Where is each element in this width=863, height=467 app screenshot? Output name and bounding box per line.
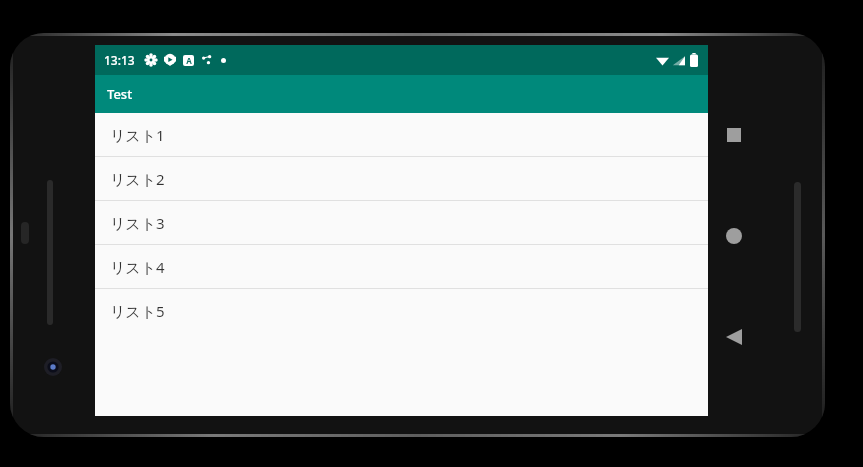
button[interactable]: リスト5 <box>95 289 708 333</box>
staticText: リスト3 <box>110 213 165 233</box>
staticText: リスト5 <box>110 301 165 321</box>
button[interactable]: Test <box>95 75 708 113</box>
button[interactable]: リスト2 <box>95 157 708 201</box>
staticText: リスト2 <box>110 169 165 189</box>
button[interactable]: リスト4 <box>95 245 708 289</box>
button[interactable]: リスト3 <box>95 201 708 245</box>
staticText: A <box>186 55 192 66</box>
button[interactable]: Home <box>712 214 756 258</box>
button[interactable]: リスト1 <box>95 113 708 157</box>
staticText: リスト4 <box>110 257 165 277</box>
staticText: 13:13 <box>104 52 135 68</box>
staticText: Test <box>107 85 133 103</box>
button[interactable]: Recents <box>712 113 756 157</box>
staticText: リスト1 <box>110 125 165 145</box>
button[interactable]: Back <box>712 315 756 359</box>
